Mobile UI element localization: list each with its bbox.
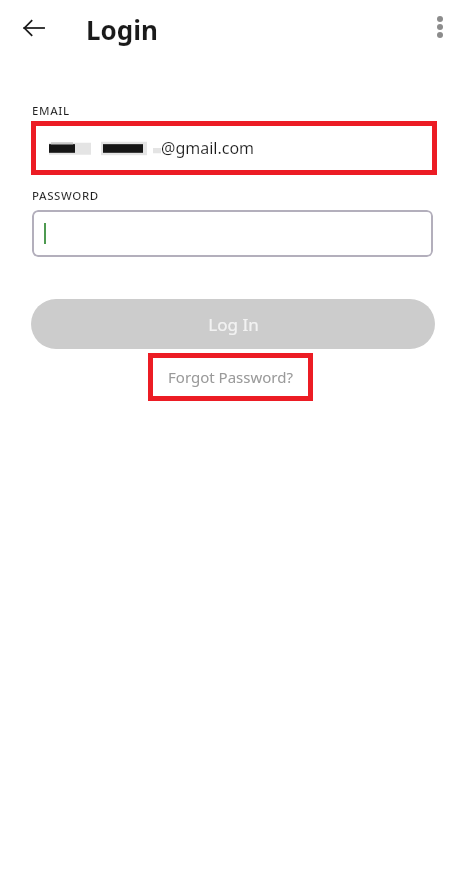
button[interactable] — [32, 210, 433, 257]
staticText: Forgot Password? — [168, 367, 293, 387]
button[interactable]: More options — [420, 7, 460, 47]
button[interactable]: Forgot Password? — [148, 353, 313, 401]
staticText: Login — [86, 12, 158, 47]
staticText: PASSWORD — [32, 188, 99, 204]
staticText: Log In — [208, 313, 259, 336]
button[interactable]: Log In — [31, 299, 435, 349]
staticText: EMAIL — [32, 103, 70, 119]
button[interactable]: @gmail.com — [31, 121, 437, 175]
staticText: @gmail.com — [161, 137, 255, 159]
button[interactable]: Back — [14, 8, 54, 48]
